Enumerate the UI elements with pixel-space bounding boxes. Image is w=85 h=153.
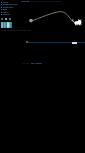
staticText: Download today [3,3,18,6]
button[interactable]: Status [26,41,28,43]
other: Cat illustration [0,0,85,153]
button[interactable]: Home [1,1,9,4]
staticText: Lorem ipsum dolor sit amet, cons [1,29,31,32]
staticText: Community [3,6,14,9]
button[interactable]: Blog [1,8,8,11]
staticText: Welcome [21,0,31,3]
button[interactable]: Contact [1,13,10,16]
staticText: Contact [3,13,10,16]
button[interactable]: Get started [31,62,42,65]
staticText: About [3,11,9,14]
button[interactable]: Download today [1,3,18,6]
button[interactable]: Welcome [21,0,62,3]
staticText: Blog [3,8,8,11]
button[interactable]: Community [1,6,14,9]
staticText: to our open source project page [31,0,62,3]
button[interactable]: Featured image [1,22,12,28]
staticText: Home [3,1,9,4]
staticText: No data. [22,62,31,65]
staticText: Get Started [31,62,42,65]
button[interactable]: About [1,11,9,14]
